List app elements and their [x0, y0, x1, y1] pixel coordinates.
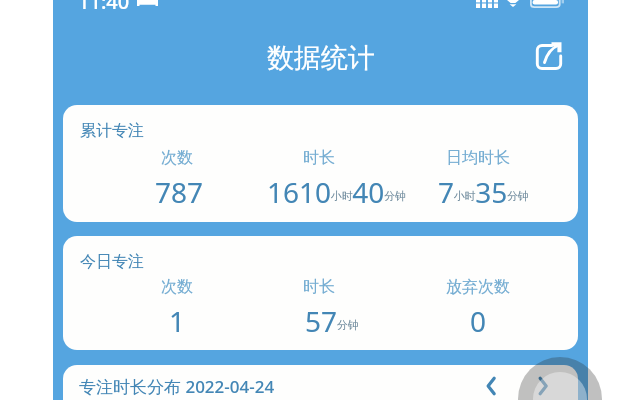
staticText: 专注时长分布 2022-04-24	[79, 375, 275, 398]
staticText: 今日专注	[80, 252, 144, 272]
staticText: 数据统计	[267, 41, 375, 75]
staticText: 57分钟	[305, 302, 359, 340]
staticText: 1	[169, 302, 186, 340]
staticText: 0	[470, 302, 487, 340]
button[interactable]: 今日专注	[63, 236, 578, 350]
staticText: 次数	[161, 277, 193, 297]
button[interactable]: Assistive touch	[518, 357, 602, 400]
button[interactable]: 累计专注	[63, 105, 578, 222]
staticText: 1610小时40分钟	[267, 173, 406, 211]
staticText: 放弃次数	[446, 277, 510, 297]
button[interactable]: 专注时长分布 2022-04-24	[63, 365, 578, 400]
button[interactable]: Next day	[527, 370, 559, 400]
button[interactable]: Share	[534, 39, 564, 69]
staticText: 11:40	[78, 0, 130, 15]
staticText: 次数	[161, 148, 193, 168]
staticText: 7小时35分钟	[438, 173, 529, 211]
staticText: 时长	[303, 148, 335, 168]
button[interactable]: Previous day	[475, 370, 507, 400]
staticText: 时长	[303, 277, 335, 297]
staticText: 累计专注	[80, 121, 144, 141]
staticText: 787	[155, 173, 204, 211]
staticText: 日均时长	[446, 148, 510, 168]
